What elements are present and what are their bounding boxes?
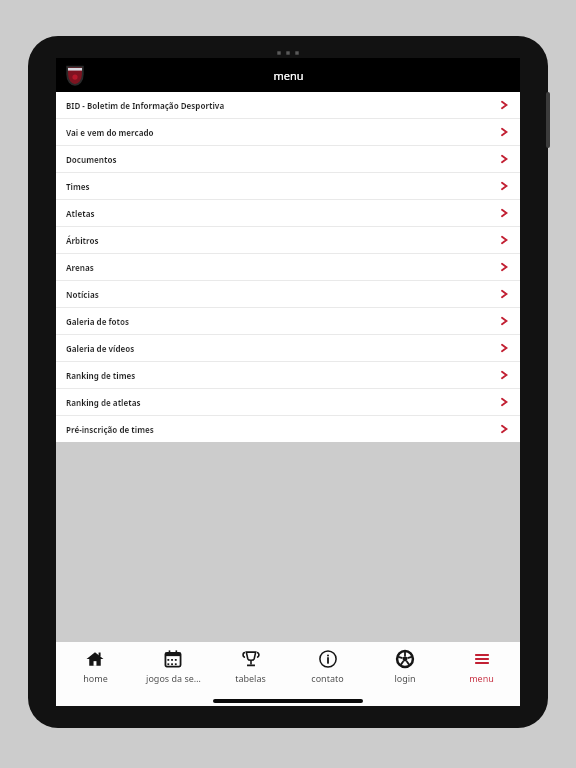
- staticText: Documentos: [66, 154, 500, 165]
- staticText: Times: [66, 181, 500, 192]
- staticText: Vai e vem do mercado: [66, 127, 500, 138]
- button[interactable]: Árbitros: [56, 227, 520, 253]
- staticText: Arenas: [66, 262, 500, 273]
- staticText: home: [83, 672, 108, 684]
- button[interactable]: Ranking de atletas: [56, 389, 520, 415]
- staticText: jogos da se…: [146, 672, 201, 684]
- button[interactable]: Documentos: [56, 146, 520, 172]
- staticText: Galeria de fotos: [66, 316, 500, 327]
- button[interactable]: contato: [289, 642, 366, 696]
- button[interactable]: Vai e vem do mercado: [56, 119, 520, 145]
- staticText: Notícias: [66, 289, 500, 300]
- button[interactable]: login: [366, 642, 443, 696]
- button[interactable]: menu: [443, 642, 520, 696]
- button[interactable]: Times: [56, 173, 520, 199]
- button[interactable]: Galeria de fotos: [56, 308, 520, 334]
- staticText: Ranking de atletas: [66, 397, 500, 408]
- staticText: menu: [469, 672, 494, 684]
- button[interactable]: BID - Boletim de Informação Desportiva: [56, 92, 520, 118]
- button[interactable]: Arenas: [56, 254, 520, 280]
- staticText: Árbitros: [66, 235, 500, 246]
- button[interactable]: tabelas: [212, 642, 289, 696]
- button[interactable]: Galeria de vídeos: [56, 335, 520, 361]
- staticText: contato: [311, 672, 344, 684]
- staticText: Atletas: [66, 208, 500, 219]
- button[interactable]: Pré-inscrição de times: [56, 416, 520, 442]
- button[interactable]: Notícias: [56, 281, 520, 307]
- staticText: menu: [273, 68, 304, 83]
- button[interactable]: Atletas: [56, 200, 520, 226]
- button[interactable]: home: [56, 642, 134, 696]
- staticText: Galeria de vídeos: [66, 343, 500, 354]
- staticText: Ranking de times: [66, 370, 500, 381]
- button[interactable]: jogos da se…: [134, 642, 212, 696]
- staticText: Pré-inscrição de times: [66, 424, 500, 435]
- staticText: BID - Boletim de Informação Desportiva: [66, 100, 500, 111]
- staticText: login: [394, 672, 416, 684]
- button[interactable]: Ranking de times: [56, 362, 520, 388]
- staticText: tabelas: [235, 672, 266, 684]
- button[interactable]: Logo: [62, 62, 88, 88]
